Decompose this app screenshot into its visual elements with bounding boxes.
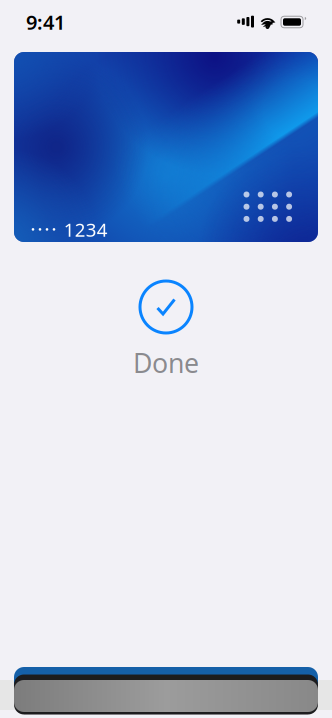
staticText: Done xyxy=(133,345,199,380)
staticText: 9:41 xyxy=(26,9,65,35)
button[interactable]: 1234 xyxy=(14,52,318,242)
staticText: 1234 xyxy=(64,217,108,242)
